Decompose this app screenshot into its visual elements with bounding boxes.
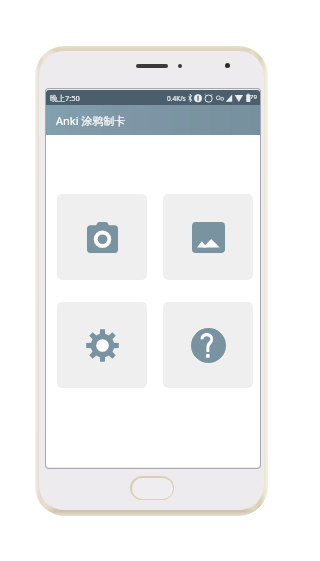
- staticText: Anki 涂鸦制卡: [56, 113, 126, 128]
- other: Help: [191, 328, 226, 363]
- button[interactable]: Settings: [57, 302, 147, 388]
- button[interactable]: Gallery: [163, 194, 253, 280]
- button[interactable]: Help: [163, 302, 253, 388]
- other: Camera: [87, 222, 118, 253]
- other: Gallery: [192, 222, 225, 253]
- staticText: 0.4K/s: [167, 94, 186, 103]
- other: Settings: [86, 329, 119, 362]
- button[interactable]: Camera: [57, 194, 147, 280]
- staticText: 晚上7:50: [50, 93, 80, 103]
- staticText: 79: [250, 93, 257, 101]
